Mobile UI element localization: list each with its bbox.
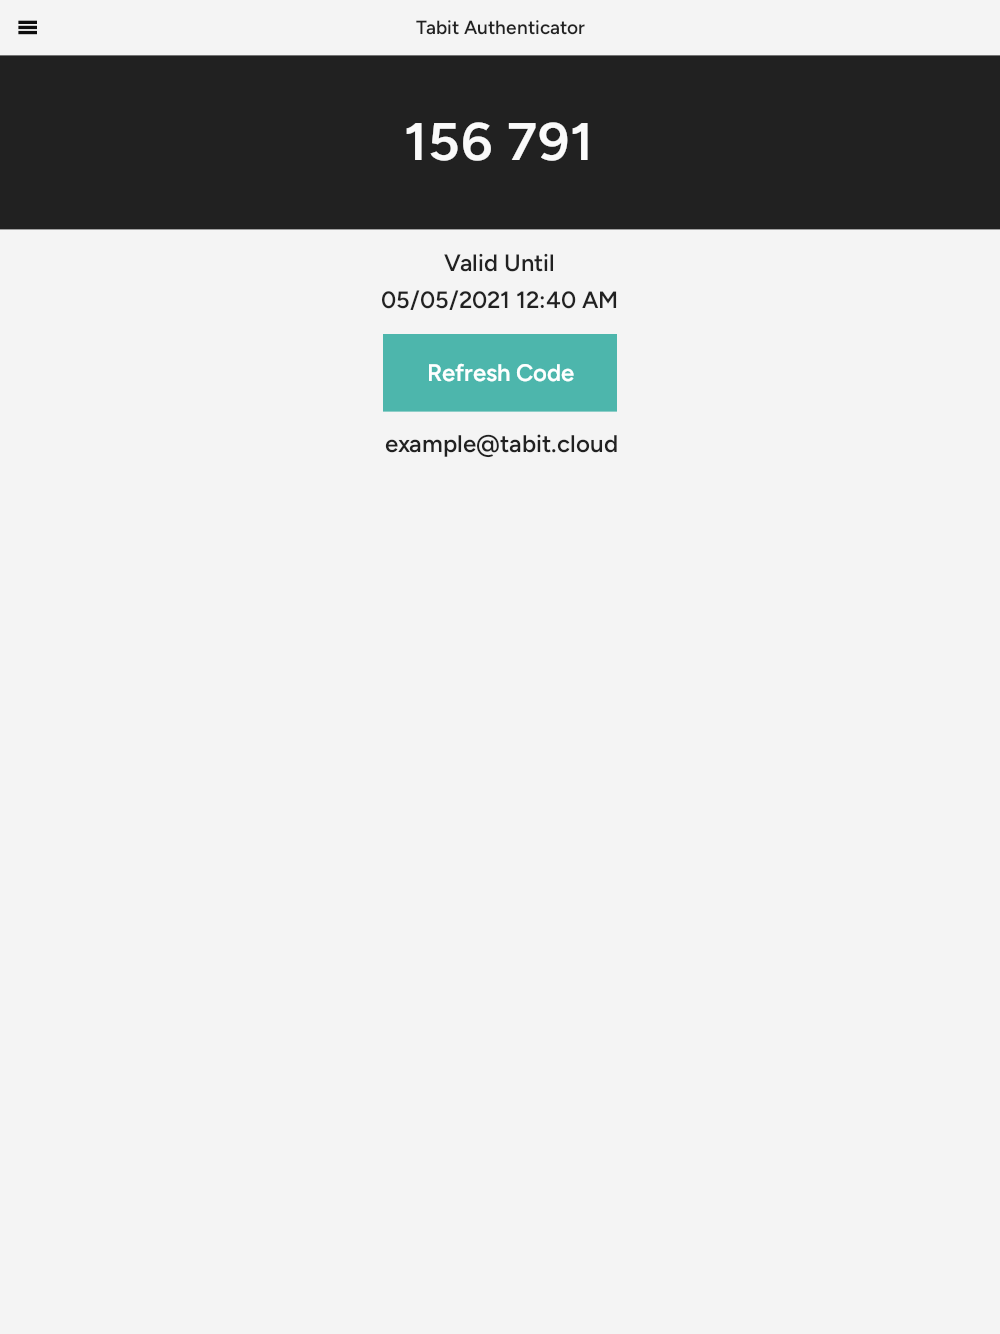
staticText: Tabit Authenticator xyxy=(0,14,1000,37)
staticText: example@tabit.cloud xyxy=(0,430,1000,459)
button[interactable]: Open navigation menu xyxy=(4,7,48,51)
button[interactable]: Refresh Code xyxy=(383,334,617,412)
staticText: Valid Until xyxy=(0,249,1000,278)
staticText: Refresh Code xyxy=(427,359,573,388)
staticText: 156 791 xyxy=(0,103,1000,167)
staticText: 05/05/2021 12:40 AM xyxy=(0,286,1000,315)
